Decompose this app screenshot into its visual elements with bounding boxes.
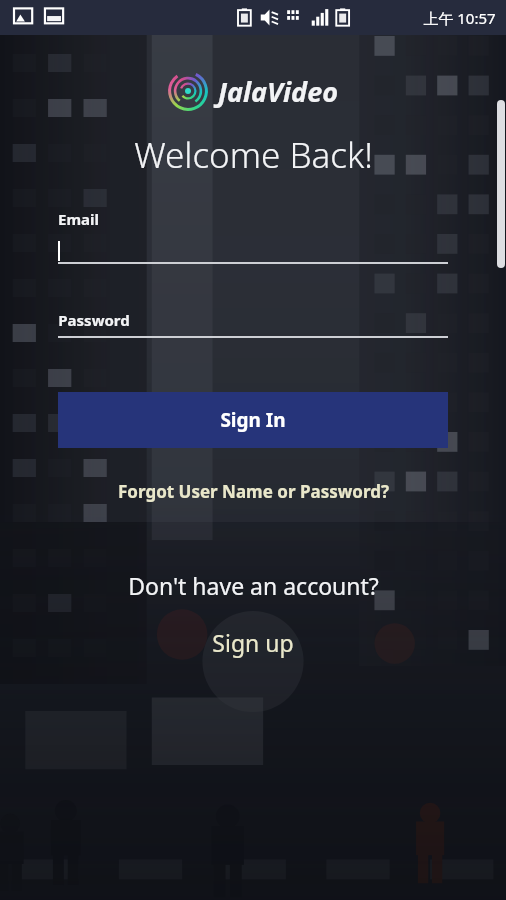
button[interactable]: Sign In — [58, 392, 448, 448]
staticText: Sign up — [212, 627, 294, 658]
staticText: Sign In — [220, 407, 286, 433]
staticText: Email — [58, 209, 99, 229]
other: JalaVideo logo — [168, 71, 208, 111]
staticText: Welcome Back! — [134, 131, 373, 179]
staticText: Don't have an account? — [128, 570, 379, 601]
staticText: Password — [58, 310, 130, 330]
staticText: 上午 10:57 — [423, 8, 496, 28]
staticText: Forgot User Name or Password? — [118, 480, 389, 503]
staticText: JalaVideo — [218, 73, 338, 110]
button[interactable] — [58, 240, 448, 262]
button[interactable]: Forgot User Name or Password? — [110, 476, 397, 507]
button[interactable]: Sign up — [202, 623, 304, 662]
